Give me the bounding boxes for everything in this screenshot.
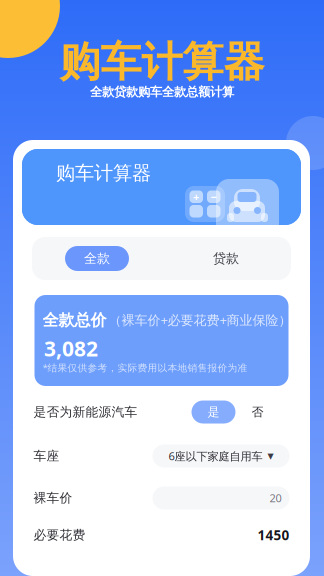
staticText: 全款 <box>84 250 110 267</box>
staticText: ▼ <box>267 451 273 461</box>
staticText: + <box>193 189 199 204</box>
button[interactable]: 贷款 <box>194 246 258 271</box>
staticText: 全款总价 <box>42 310 106 330</box>
staticText: 贷款 <box>213 250 239 267</box>
button[interactable]: 否 <box>247 400 267 423</box>
staticText: 3,082 <box>44 334 98 363</box>
staticText: 车座 <box>33 448 59 464</box>
staticText: 必要花费 <box>33 527 85 543</box>
staticText: *结果仅供参考，实际费用以本地销售报价为准 <box>42 361 247 374</box>
button[interactable]: 全款 <box>65 246 129 271</box>
staticText: 6座以下家庭自用车 <box>168 448 262 464</box>
staticText: − <box>211 189 217 204</box>
staticText: 购车计算器 <box>56 161 151 185</box>
button[interactable]: 是 <box>191 400 235 423</box>
staticText: 全款贷款购车全款总额计算 <box>90 84 234 100</box>
staticText: 20 <box>269 490 281 505</box>
staticText: 购车计算器 <box>59 36 264 88</box>
button[interactable]: 6座以下家庭自用车 <box>152 444 289 467</box>
staticText: 是 <box>207 404 219 419</box>
staticText: （裸车价+必要花费+商业保险） <box>108 311 291 329</box>
staticText: 1450 <box>257 526 289 544</box>
staticText: 裸车价 <box>33 490 72 506</box>
staticText: 否 <box>251 404 263 419</box>
staticText: 是否为新能源汽车 <box>33 404 137 420</box>
